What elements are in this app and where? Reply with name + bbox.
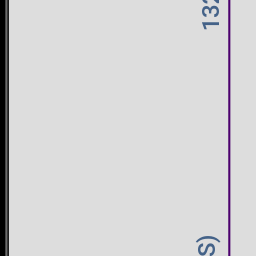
button[interactable]: Chart [0,0,256,256]
